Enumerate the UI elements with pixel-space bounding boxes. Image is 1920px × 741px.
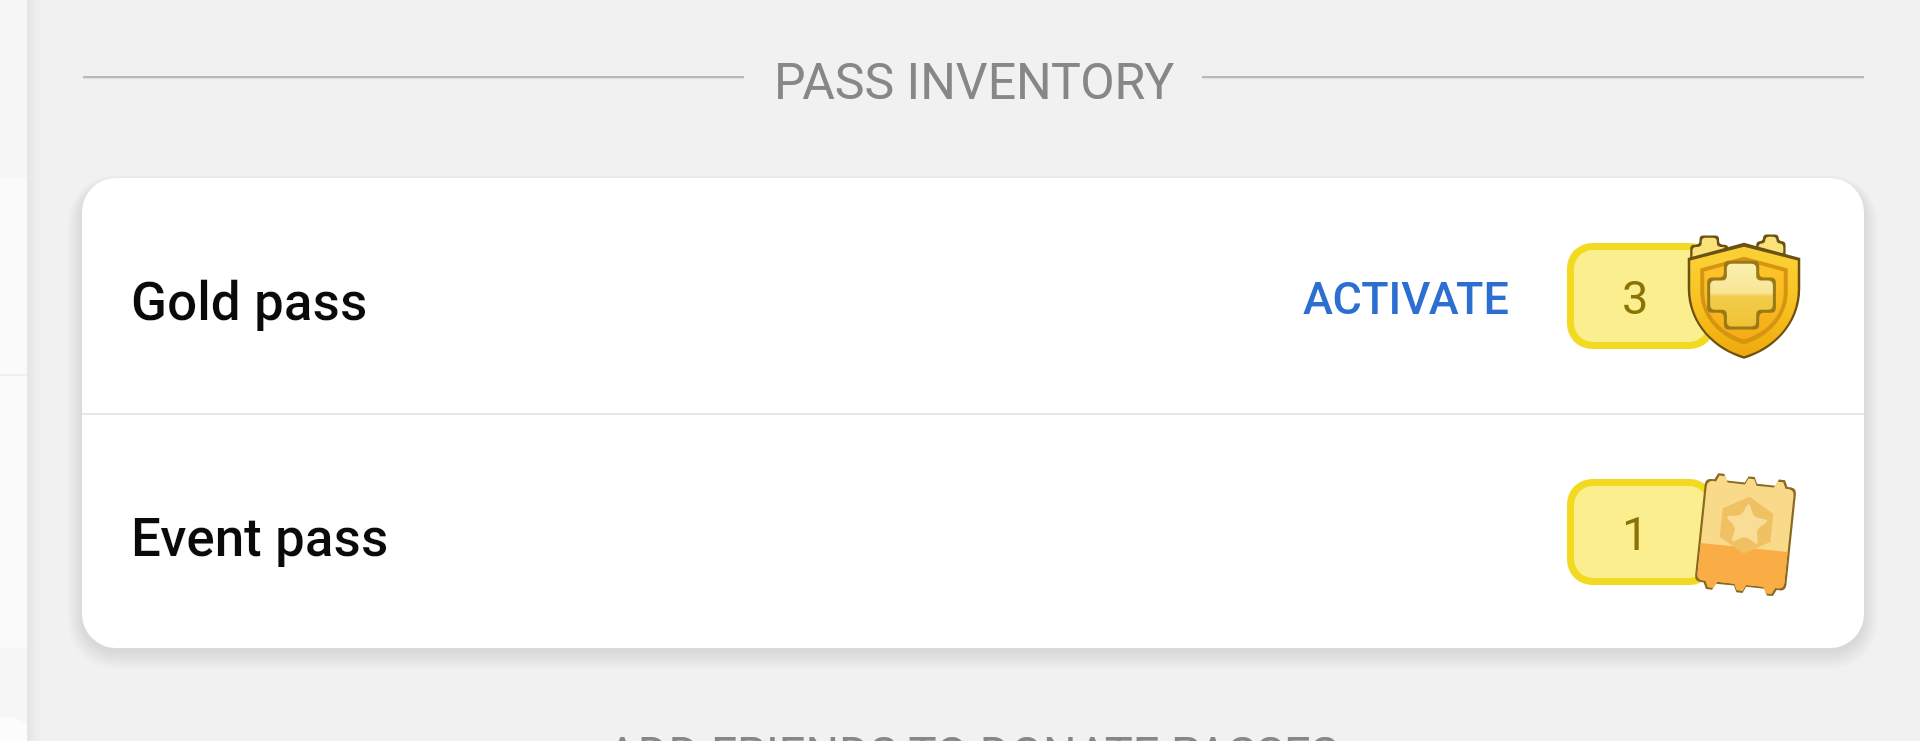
button[interactable]: Gold pass, 3 owned bbox=[1551, 221, 1816, 371]
staticText: ADD FRIENDS TO DONATE PASSES bbox=[607, 726, 1339, 741]
staticText: 1 bbox=[1622, 506, 1649, 561]
button[interactable]: Gold pass bbox=[82, 178, 1864, 413]
staticText: Gold pass bbox=[131, 271, 368, 333]
staticText: 3 bbox=[1622, 270, 1649, 325]
button[interactable]: Event pass, 1 owned bbox=[1551, 457, 1816, 607]
button[interactable]: ACTIVATE bbox=[1279, 250, 1533, 347]
staticText: PASS INVENTORY bbox=[774, 53, 1175, 112]
button[interactable]: Event pass bbox=[82, 415, 1864, 648]
staticText: ACTIVATE bbox=[1303, 272, 1509, 325]
staticText: Event pass bbox=[131, 507, 389, 569]
